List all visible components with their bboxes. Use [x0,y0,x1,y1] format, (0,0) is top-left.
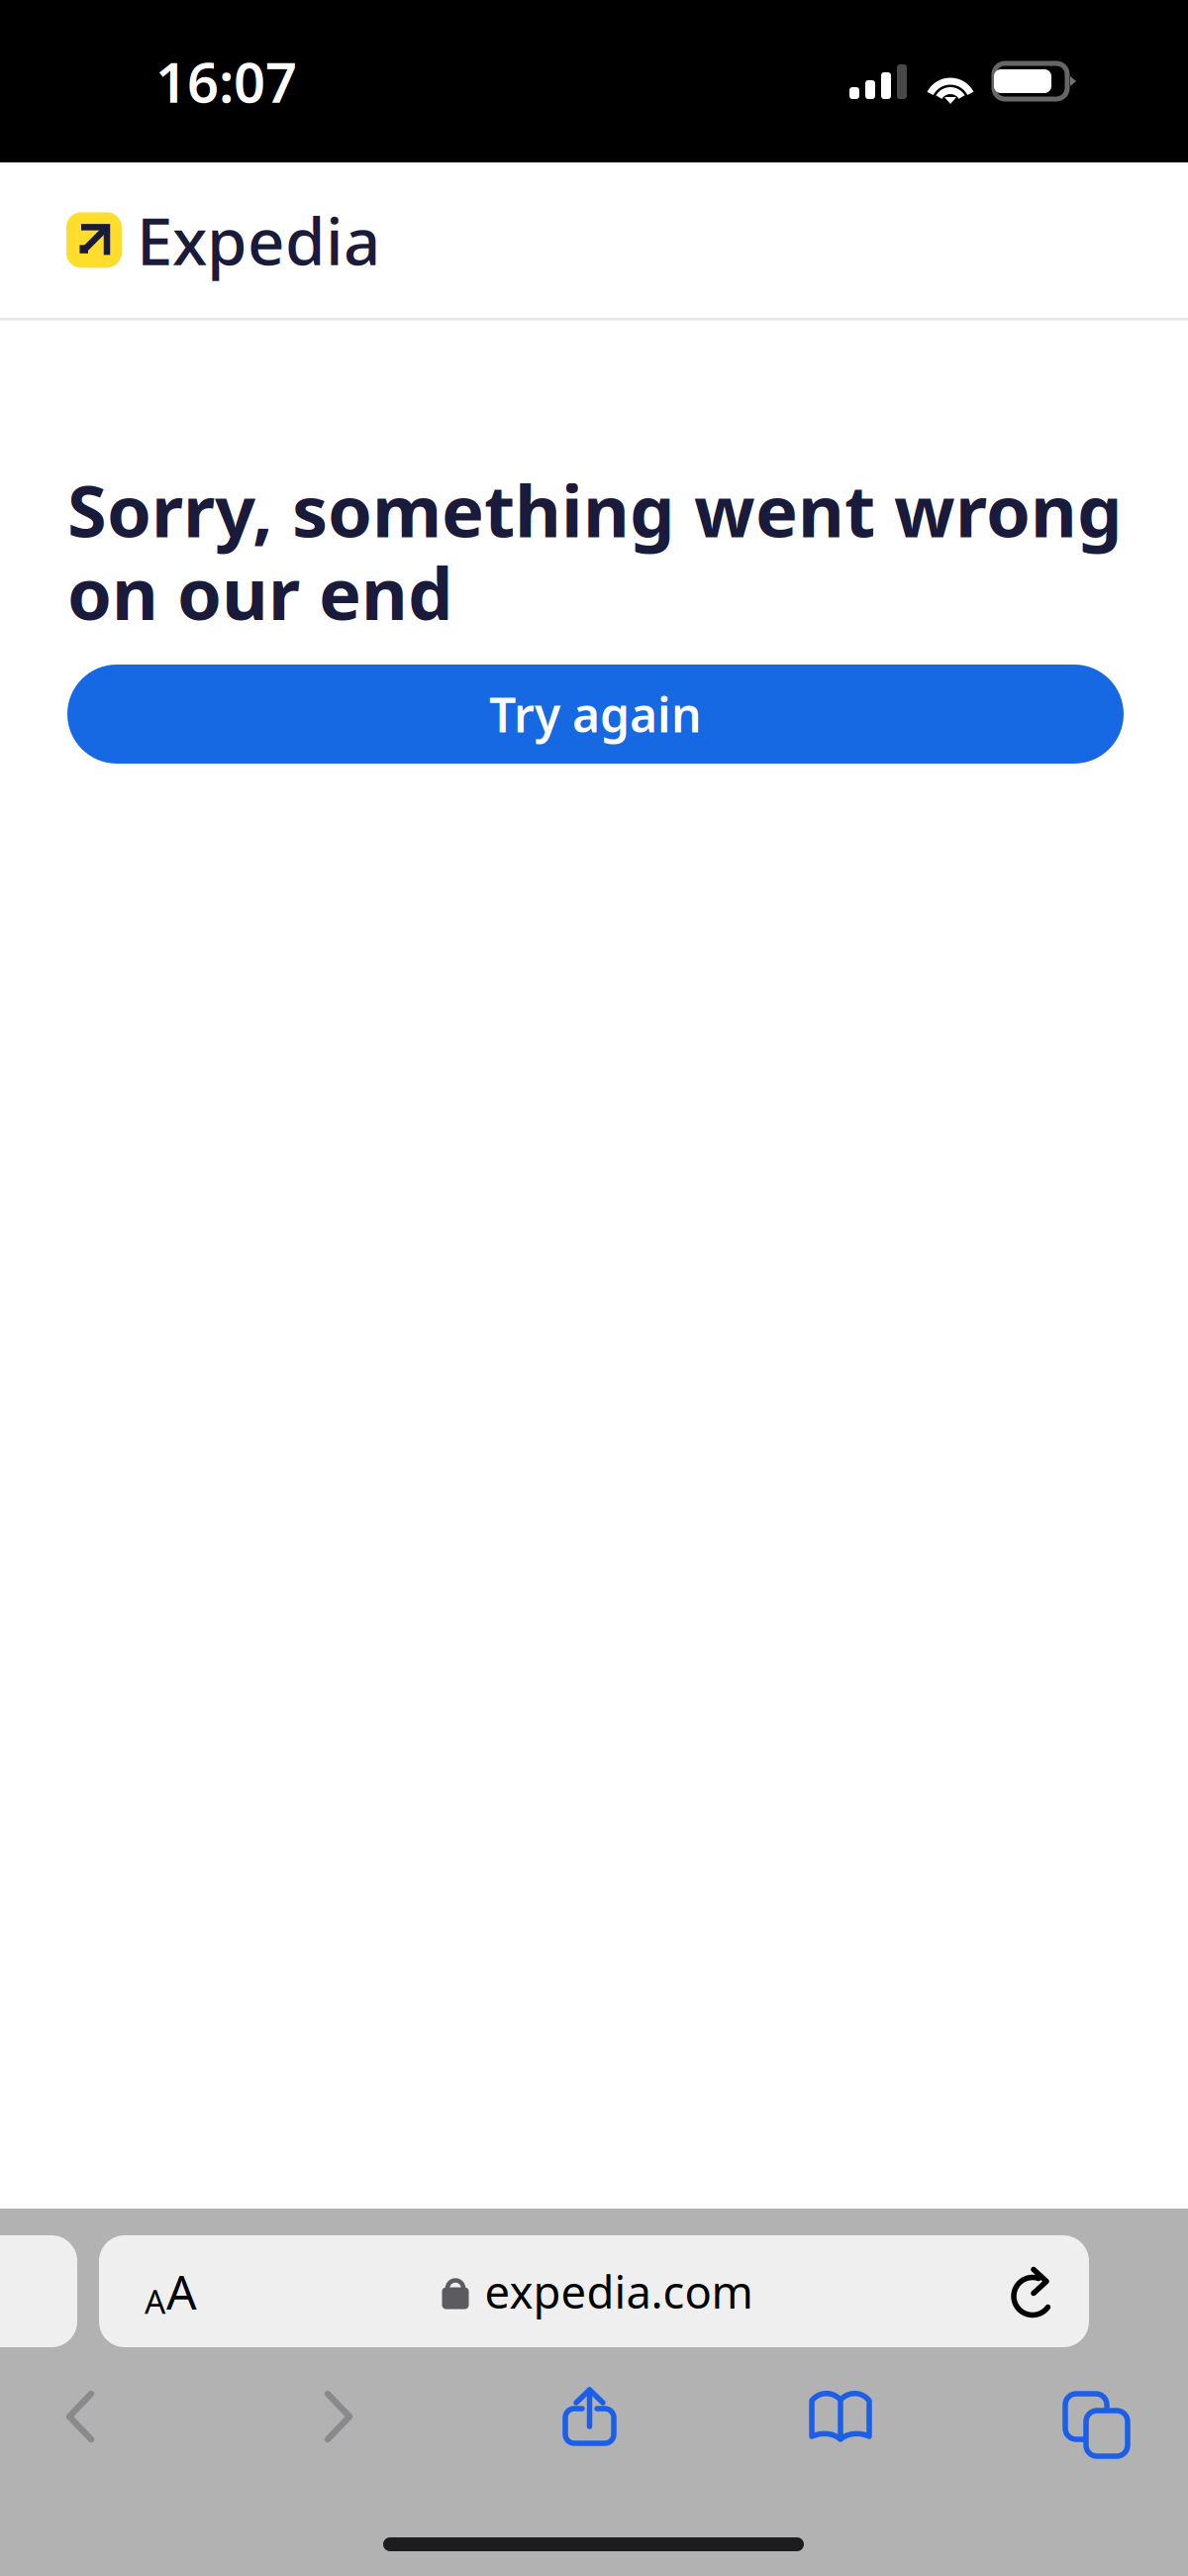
staticText: Expedia [137,197,380,283]
button[interactable]: Forward [264,2369,413,2464]
button[interactable]: Back [6,2369,154,2464]
staticText: A [145,2279,165,2323]
staticText: A [166,2260,197,2323]
staticText: on our end [67,545,453,640]
button[interactable]: Try again [67,665,1124,764]
button[interactable]: Tabs [1012,2369,1160,2464]
button[interactable]: Bookmarks [767,2369,916,2464]
button[interactable]: A [99,2235,1089,2347]
button[interactable]: Share [516,2369,664,2464]
staticText: 16:07 [155,44,297,118]
button[interactable]: Expedia [0,162,404,318]
staticText: Try again [489,682,702,746]
staticText: expedia.com [485,2261,753,2321]
staticText: Sorry, something went wrong [67,462,1123,557]
